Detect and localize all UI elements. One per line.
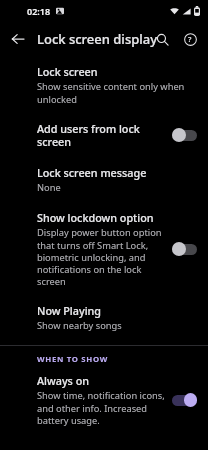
button[interactable]: Show lockdown option	[0, 202, 208, 295]
staticText: 02:18	[27, 5, 51, 17]
staticText: WHEN TO SHOW	[37, 354, 109, 365]
staticText: Lock screen message	[37, 165, 147, 180]
button[interactable]: Help	[177, 26, 203, 52]
staticText: Add users from lock screen	[37, 121, 167, 149]
button[interactable]: Now Playing	[0, 295, 208, 340]
staticText: Lock screen display	[37, 30, 158, 48]
button[interactable]: On	[172, 392, 197, 408]
button[interactable]: Search	[149, 26, 175, 52]
staticText: Show time, notification icons, and other…	[37, 389, 167, 426]
staticText: Lock screen	[37, 64, 98, 79]
button[interactable]: Back	[4, 25, 32, 53]
staticText: Show lockdown option	[37, 210, 154, 225]
staticText: Now Playing	[37, 303, 102, 318]
staticText: Display power button option that turns o…	[37, 226, 167, 287]
button[interactable]: Always on	[0, 371, 208, 434]
button[interactable]: Add users from lock screen	[0, 113, 208, 157]
staticText: Show sensitive content only when unlocke…	[37, 80, 199, 105]
button[interactable]: Lock screen	[0, 59, 208, 113]
staticText: Always on	[37, 373, 89, 388]
staticText: None	[37, 181, 61, 194]
staticText: ?	[188, 34, 192, 44]
button[interactable]: Off	[172, 241, 197, 257]
button[interactable]: Lock screen message	[0, 157, 208, 202]
staticText: Show nearby songs	[37, 319, 122, 332]
button[interactable]: Off	[172, 127, 197, 143]
